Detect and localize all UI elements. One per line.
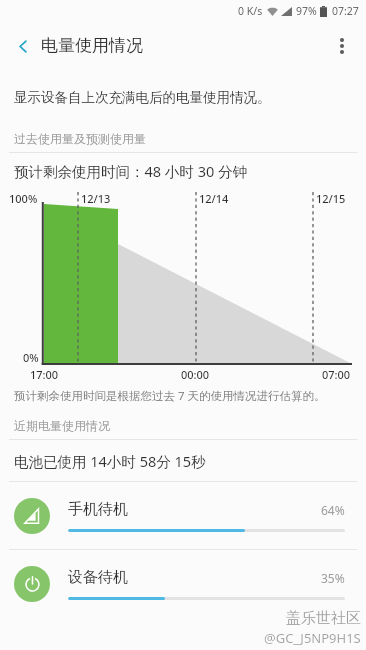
staticText: 过去使用量及预测使用量: [14, 131, 146, 146]
staticText: 电池已使用 14小时 58分 15秒: [14, 451, 206, 471]
other: Phone idle battery usage: [14, 498, 50, 534]
staticText: 近期电量使用情况: [14, 418, 110, 433]
staticText: 显示设备自上次充满电后的电量使用情况。: [14, 89, 271, 106]
staticText: 12/15: [316, 191, 346, 206]
staticText: 64%: [321, 502, 345, 518]
staticText: 12/14: [199, 191, 229, 206]
staticText: 35%: [321, 570, 345, 586]
staticText: 12/13: [81, 191, 111, 206]
staticText: 00:00: [181, 367, 210, 382]
staticText: @GC_J5NP9H1S: [264, 629, 361, 647]
staticText: 17:00: [30, 367, 59, 382]
staticText: 07:00: [322, 367, 351, 382]
button[interactable]: Device idle battery usage: [0, 550, 366, 617]
staticText: 0 K/s: [238, 4, 263, 18]
staticText: 07:27: [332, 4, 359, 18]
staticText: 预计剩余使用时间是根据您过去 7 天的使用情况进行估算的。: [14, 388, 326, 404]
other: Device idle battery usage: [14, 566, 50, 602]
button[interactable]: Back: [3, 26, 43, 66]
staticText: 97%: [296, 4, 317, 18]
staticText: 手机待机: [68, 500, 321, 519]
staticText: 盖乐世社区: [286, 609, 361, 628]
button[interactable]: Phone idle battery usage: [0, 482, 366, 549]
button[interactable]: More options: [322, 26, 362, 66]
staticText: 100%: [9, 191, 38, 206]
staticText: 电量使用情况: [41, 35, 143, 56]
staticText: 设备待机: [68, 568, 321, 587]
staticText: 0%: [23, 350, 39, 365]
staticText: 预计剩余使用时间：48 小时 30 分钟: [14, 161, 247, 181]
